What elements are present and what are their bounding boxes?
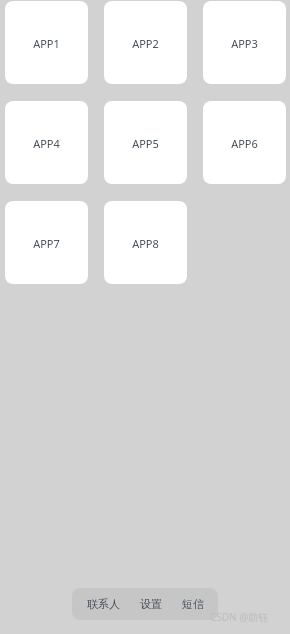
button[interactable]: APP4 <box>5 101 88 184</box>
staticText: 短信 <box>182 597 204 611</box>
button[interactable]: 设置 <box>137 595 165 613</box>
button[interactable]: APP7 <box>5 201 88 284</box>
staticText: APP2 <box>132 36 159 51</box>
button[interactable]: 短信 <box>179 595 207 613</box>
staticText: APP1 <box>33 36 60 51</box>
staticText: APP4 <box>33 136 60 151</box>
button[interactable]: APP8 <box>104 201 187 284</box>
button[interactable]: APP6 <box>203 101 286 184</box>
button[interactable]: APP3 <box>203 1 286 84</box>
staticText: CSDN @肪钰 <box>210 610 269 624</box>
button[interactable]: 联系人 <box>84 595 123 613</box>
button[interactable]: APP1 <box>5 1 88 84</box>
staticText: 联系人 <box>87 597 120 611</box>
staticText: APP8 <box>132 236 159 251</box>
staticText: APP7 <box>33 236 60 251</box>
button[interactable]: APP2 <box>104 1 187 84</box>
staticText: APP3 <box>231 36 258 51</box>
staticText: 设置 <box>140 597 162 611</box>
button[interactable]: APP5 <box>104 101 187 184</box>
staticText: APP5 <box>132 136 159 151</box>
staticText: APP6 <box>231 136 258 151</box>
